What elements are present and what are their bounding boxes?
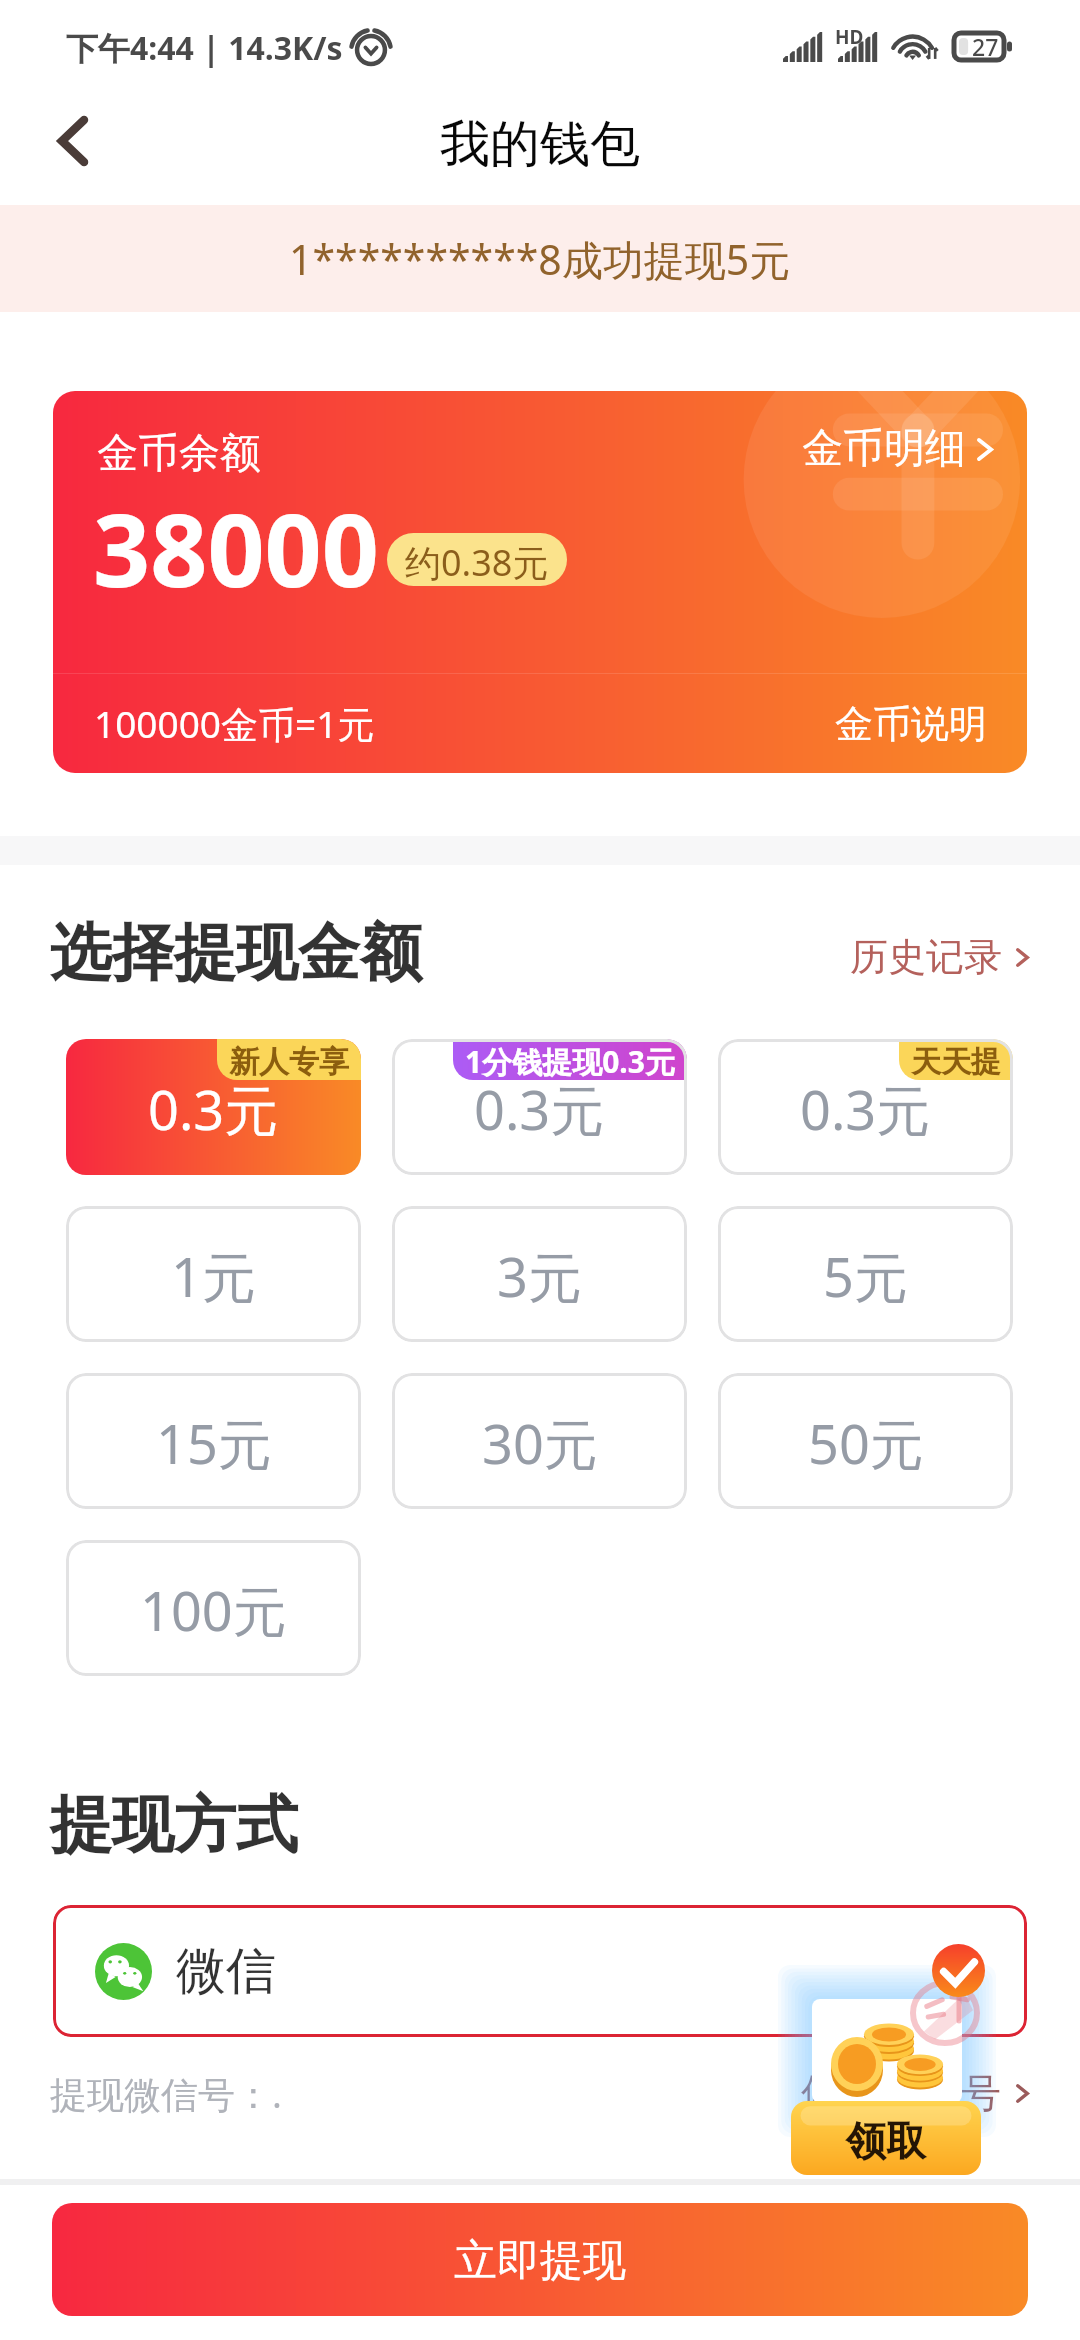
staticText: 5元: [823, 1239, 908, 1313]
staticText: 我的钱包: [440, 113, 640, 176]
staticText: 领取: [846, 2116, 926, 2166]
staticText: 金币说明: [835, 700, 987, 748]
staticText: 27: [972, 31, 999, 62]
staticText: 天天提: [911, 1043, 1001, 1080]
button[interactable]: Back: [30, 96, 116, 186]
staticText: 1**********8成功提现5元: [289, 231, 791, 287]
button[interactable]: 1元: [66, 1206, 361, 1342]
staticText: 15元: [156, 1406, 272, 1480]
staticText: 下午4:44 | 14.3K/s: [66, 26, 343, 70]
staticText: 0.3元: [800, 1072, 931, 1146]
button[interactable]: 30元: [392, 1373, 687, 1509]
staticText: 选择提现金额: [50, 914, 422, 992]
staticText: 金币明细: [802, 423, 966, 475]
button[interactable]: 0.3元: [392, 1039, 687, 1175]
staticText: 38000: [93, 480, 379, 616]
staticText: 约0.38元: [405, 538, 549, 586]
button[interactable]: 50元: [718, 1373, 1013, 1509]
button[interactable]: 提现微信号：.: [50, 2061, 1030, 2125]
button[interactable]: 领取: [791, 2101, 981, 2175]
button[interactable]: 历史记录: [850, 933, 1030, 981]
button[interactable]: 金币明细: [802, 423, 994, 475]
staticText: 立即提现: [454, 2234, 626, 2288]
button[interactable]: 0.3元: [66, 1039, 361, 1175]
button[interactable]: 微信: [53, 1905, 1027, 2037]
button[interactable]: 100元: [66, 1540, 361, 1676]
staticText: 1分钱提现0.3元: [465, 1041, 675, 1080]
staticText: 1元: [171, 1239, 256, 1313]
button[interactable]: 金币说明: [815, 686, 1027, 762]
staticText: 100000金币=1元: [94, 698, 375, 749]
staticText: 微信: [176, 1940, 276, 2003]
staticText: 30元: [482, 1406, 598, 1480]
button[interactable]: 关闭: [932, 1944, 985, 1997]
staticText: 金币余额: [97, 428, 261, 480]
staticText: 3元: [497, 1239, 582, 1313]
button[interactable]: 0.3元: [718, 1039, 1013, 1175]
button[interactable]: 15元: [66, 1373, 361, 1509]
staticText: 100元: [140, 1573, 287, 1647]
button[interactable]: 5元: [718, 1206, 1013, 1342]
staticText: 0.3元: [474, 1072, 605, 1146]
staticText: 修改微信号: [801, 2068, 1001, 2118]
staticText: 50元: [808, 1406, 924, 1480]
button[interactable]: 3元: [392, 1206, 687, 1342]
staticText: 新人专享: [229, 1043, 349, 1080]
staticText: 0.3元: [148, 1072, 279, 1146]
staticText: 提现方式: [50, 1786, 298, 1864]
staticText: 提现微信号：.: [50, 2068, 282, 2119]
button[interactable]: 立即提现: [52, 2203, 1028, 2316]
staticText: 历史记录: [850, 933, 1002, 981]
staticText: HD: [835, 24, 864, 50]
